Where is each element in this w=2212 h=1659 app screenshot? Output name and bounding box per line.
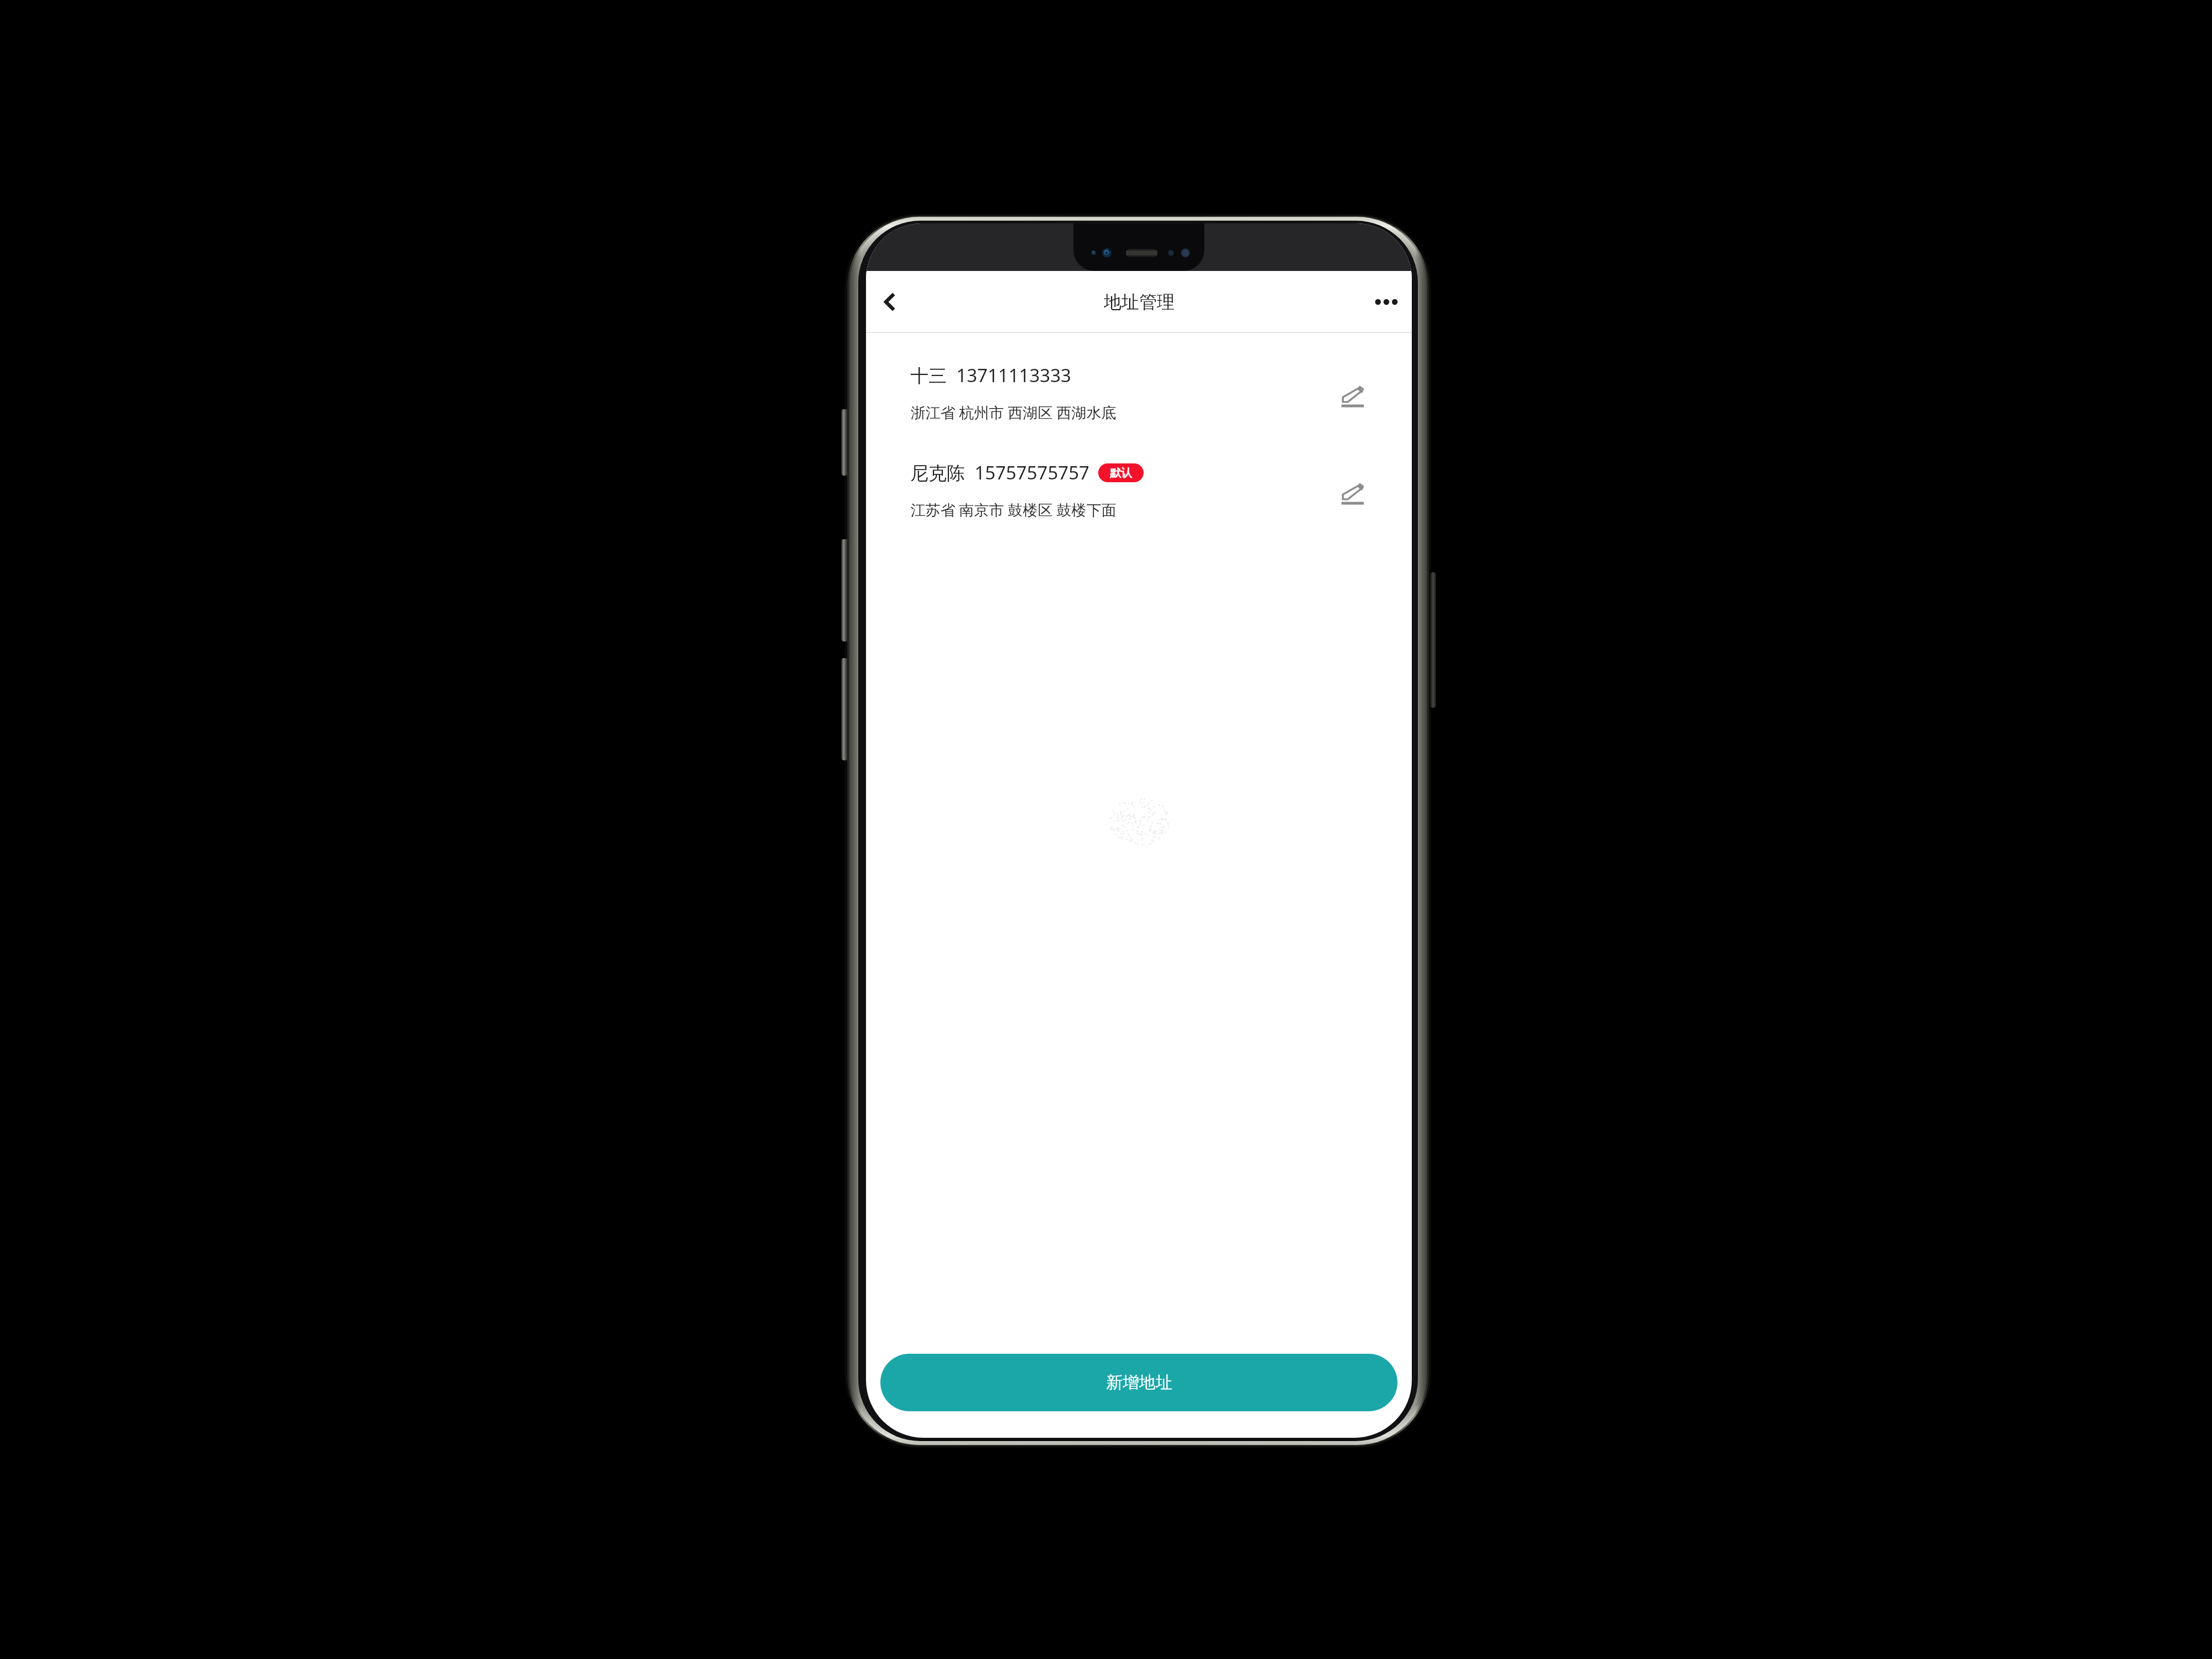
button[interactable]: 新增地址	[880, 1354, 1397, 1411]
staticText: 十三 13711113333	[910, 363, 1071, 388]
button[interactable]: 十三 13711113333	[866, 363, 1412, 422]
button[interactable]: Edit address	[1332, 473, 1373, 514]
button[interactable]: Edit address	[1332, 376, 1373, 417]
staticText: 地址管理	[1104, 291, 1175, 313]
staticText: 江苏省 南京市 鼓楼区 鼓楼下面	[910, 499, 1117, 520]
staticText: 尼克陈 15757575757	[910, 460, 1089, 485]
staticText: 默认	[1110, 466, 1132, 480]
staticText: 新增地址	[1106, 1372, 1172, 1393]
button[interactable]: Back	[869, 271, 911, 333]
button[interactable]: 尼克陈 15757575757	[866, 460, 1412, 520]
button[interactable]: More options	[1365, 271, 1407, 333]
staticText: 浙江省 杭州市 西湖区 西湖水底	[910, 402, 1117, 422]
